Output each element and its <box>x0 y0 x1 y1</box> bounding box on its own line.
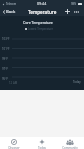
staticText: 98% <box>71 2 77 6</box>
button[interactable]: Back <box>0 8 18 16</box>
staticText: Community <box>62 146 78 149</box>
button[interactable]: Community <box>56 137 84 149</box>
staticText: 97°F <box>2 67 8 71</box>
staticText: 103°F <box>2 37 10 41</box>
staticText: 101°F <box>2 47 10 51</box>
staticText: 95°F <box>2 77 8 81</box>
staticText: 12 AM <box>9 81 18 85</box>
button[interactable]: Add <box>63 7 72 16</box>
staticText: Lowest Temperature <box>28 27 53 31</box>
staticText: Back <box>6 9 16 15</box>
staticText: Telecom <box>6 2 17 6</box>
staticText: Core Temperature <box>23 20 53 25</box>
button[interactable]: Today <box>28 137 56 149</box>
staticText: Today <box>73 80 81 84</box>
staticText: Discover <box>8 146 20 149</box>
staticText: 09:44 <box>37 1 47 6</box>
staticText: Today <box>38 146 46 149</box>
staticText: Temperature <box>28 9 57 15</box>
staticText: 99°F <box>2 57 8 61</box>
button[interactable]: More options <box>72 7 81 16</box>
button[interactable]: Discover <box>0 137 28 149</box>
